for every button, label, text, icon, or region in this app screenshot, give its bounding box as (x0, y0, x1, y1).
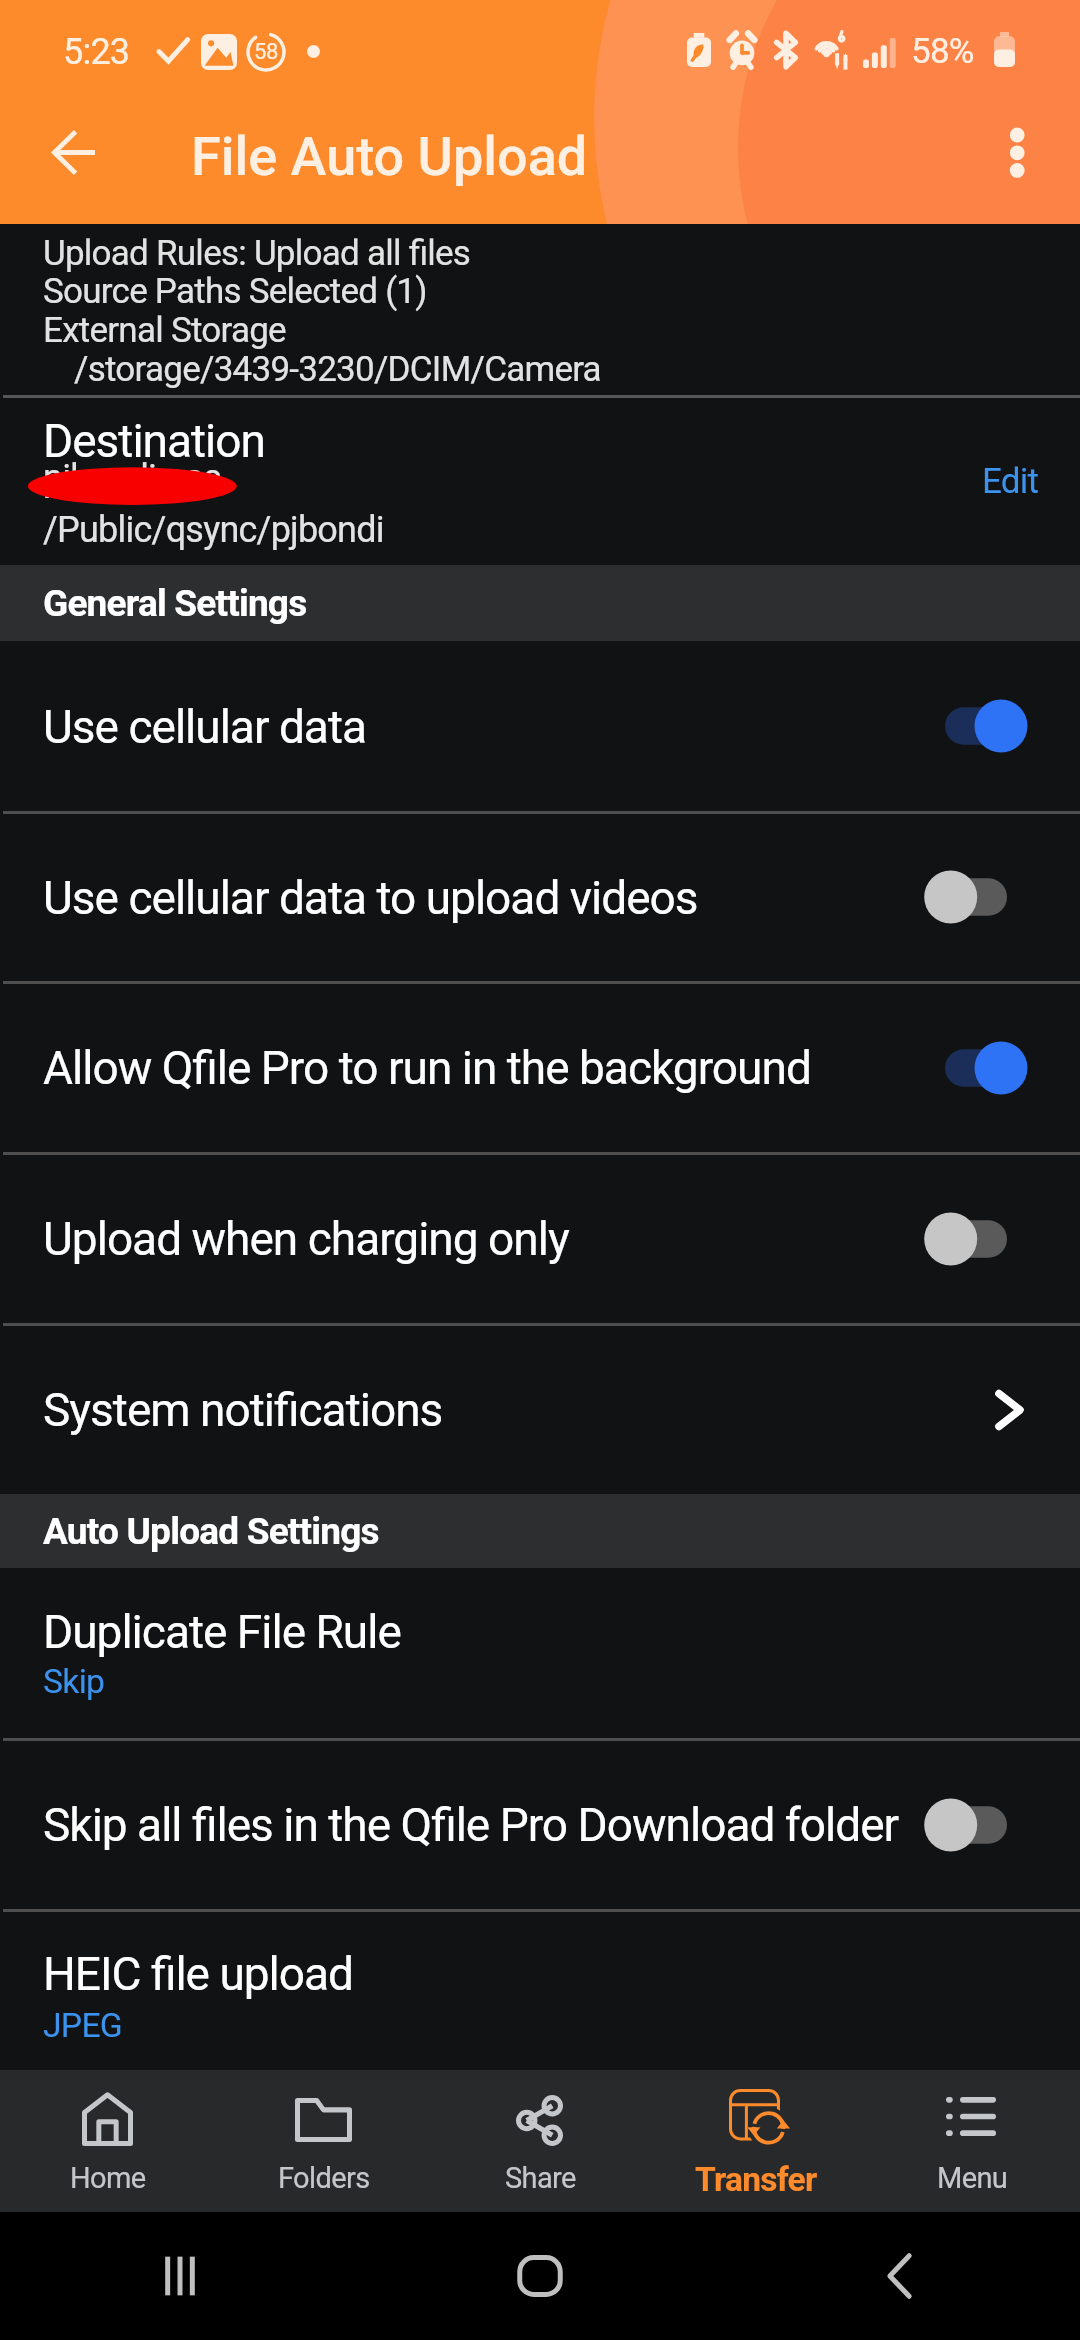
staticText: JPEG (43, 2006, 123, 2045)
button[interactable]: System notifications (0, 1325, 1080, 1494)
staticText: pjbondi-nas (43, 457, 221, 499)
button[interactable]: Menu (864, 2070, 1080, 2212)
staticText: Folders (278, 2161, 370, 2195)
staticText: File Auto Upload (191, 125, 588, 188)
button[interactable]: Duplicate File Rule (0, 1568, 1080, 1738)
staticText: Share (505, 2161, 576, 2195)
staticText: Upload when charging only (43, 1212, 569, 1266)
button[interactable]: Allow Qfile Pro to run in the background (0, 983, 1080, 1152)
staticText: Destination (43, 414, 265, 468)
staticText: HEIC file upload (43, 1947, 354, 2001)
button[interactable]: More options (974, 111, 1060, 195)
staticText: /storage/3439-3230/DCIM/Camera (74, 349, 601, 390)
staticText: Skip (43, 1662, 105, 1701)
button[interactable]: Destination (0, 398, 1080, 565)
staticText: Skip all files in the Qfile Pro Download… (43, 1798, 899, 1852)
staticText: System notifications (43, 1383, 443, 1437)
button[interactable]: Home (492, 2228, 588, 2324)
staticText: Transfer (695, 2160, 817, 2199)
staticText: 58 (254, 39, 278, 65)
staticText: 58% (911, 31, 974, 72)
staticText: Use cellular data (43, 700, 366, 754)
staticText: Menu (937, 2161, 1008, 2195)
staticText: Auto Upload Settings (43, 1510, 379, 1553)
button[interactable]: Skip all files in the Qfile Pro Download… (0, 1740, 1080, 1909)
button[interactable]: Home (0, 2070, 216, 2212)
button[interactable]: HEIC file upload (0, 1911, 1080, 2070)
button[interactable]: Back (21, 111, 127, 195)
staticText: Upload Rules: Upload all files (43, 233, 471, 274)
button[interactable]: Transfer (648, 2070, 864, 2212)
staticText: Home (70, 2161, 146, 2195)
staticText: External Storage (43, 310, 286, 351)
button[interactable]: Share (432, 2070, 648, 2212)
button[interactable]: Folders (216, 2070, 432, 2212)
button[interactable]: Use cellular data to upload videos (0, 813, 1080, 981)
button[interactable]: Use cellular data (0, 641, 1080, 811)
staticText: Source Paths Selected (1) (43, 271, 427, 312)
button[interactable]: Recents (132, 2228, 228, 2324)
staticText: 5:23 (63, 31, 130, 73)
staticText: Use cellular data to upload videos (43, 871, 698, 925)
button[interactable]: Upload when charging only (0, 1154, 1080, 1323)
staticText: Edit (982, 461, 1039, 502)
button[interactable]: Back (852, 2228, 948, 2324)
staticText: /Public/qsync/pjbondi (43, 509, 384, 551)
staticText: Duplicate File Rule (43, 1605, 401, 1659)
staticText: General Settings (43, 582, 307, 625)
staticText: Allow Qfile Pro to run in the background (43, 1041, 811, 1095)
